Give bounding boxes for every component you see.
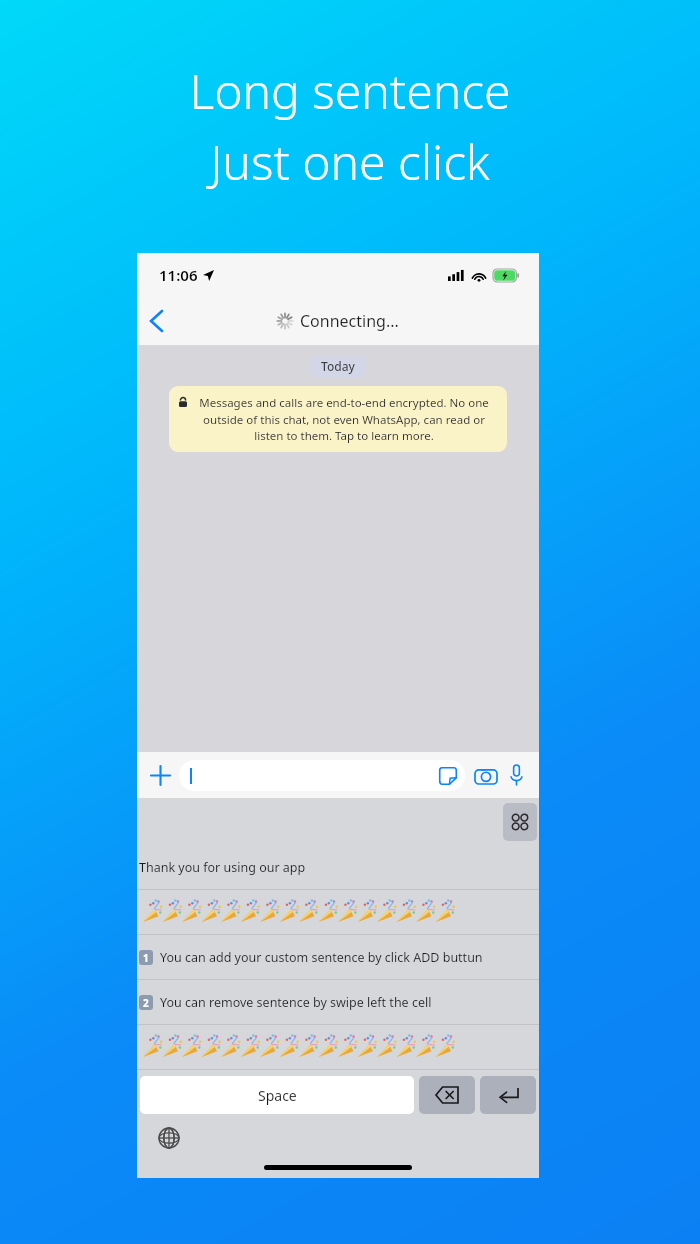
staticText: 2	[143, 996, 149, 1010]
staticText: Connecting...	[300, 310, 399, 332]
button[interactable]: 1	[137, 935, 539, 979]
staticText: 1	[143, 951, 149, 965]
staticText: Today	[321, 358, 355, 374]
button[interactable]: Return	[480, 1076, 536, 1114]
staticText: Space	[258, 1086, 297, 1105]
staticText: You can add your custom sentence by clic…	[160, 949, 483, 966]
staticText: Messages and calls are end-to-end encryp…	[191, 395, 497, 443]
button[interactable]	[137, 1025, 539, 1069]
button[interactable]: Change keyboard	[155, 1124, 183, 1152]
button[interactable]: Backspace	[419, 1076, 475, 1114]
button[interactable]: Thank you for using our app	[137, 845, 539, 889]
button[interactable]	[137, 890, 539, 934]
staticText: Long sentence	[189, 58, 511, 123]
staticText: 11:06	[159, 265, 198, 285]
button[interactable]: Camera	[471, 760, 501, 790]
staticText: Thank you for using our app	[139, 859, 306, 876]
staticText: You can remove sentence by swipe left th…	[160, 994, 432, 1011]
button[interactable]: Keyboard switcher	[503, 803, 537, 841]
button[interactable]: Today	[321, 358, 355, 374]
button[interactable]: Space	[140, 1076, 414, 1114]
button[interactable]: 2	[137, 980, 539, 1024]
button[interactable]	[179, 760, 465, 791]
button[interactable]: Back	[137, 302, 175, 340]
button[interactable]: Attach	[145, 760, 175, 790]
staticText: Just one click	[210, 129, 490, 194]
button[interactable]: Messages and calls are end-to-end encryp…	[169, 386, 507, 452]
button[interactable]: Voice message	[501, 760, 531, 790]
